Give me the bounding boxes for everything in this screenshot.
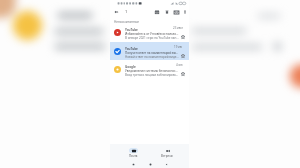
staticText: YouTube	[125, 47, 138, 51]
staticText: Google	[125, 65, 136, 69]
staticText: YouTube	[125, 28, 138, 32]
button[interactable]: YouTube	[110, 23, 189, 42]
staticText: 19 ию	[174, 45, 183, 49]
button[interactable]: Archive	[153, 8, 161, 16]
button[interactable]: Star	[180, 53, 186, 59]
staticText: Вход третьих лицами заблокирован/Бутлег	[125, 73, 179, 77]
staticText: 1	[125, 9, 128, 14]
staticText: 23 июл	[173, 26, 183, 30]
button[interactable]: Star	[180, 34, 186, 40]
staticText: Избавляйтесь от Угловёв использованными	[125, 32, 179, 36]
button[interactable]: More options	[181, 8, 189, 16]
staticText: Встречи	[161, 154, 173, 158]
button[interactable]: Google	[110, 60, 189, 79]
button[interactable]: Встречи	[156, 148, 178, 158]
button[interactable]: Mark as unread	[172, 8, 180, 16]
button[interactable]: Recents	[130, 161, 136, 167]
button[interactable]: Back	[112, 8, 120, 16]
staticText: Получен ответ на комментарий видео сети	[125, 51, 179, 55]
staticText: 4 ию	[176, 63, 183, 67]
staticText: В январе 2021 сери на YouTube каналу ещё	[125, 36, 179, 40]
staticText: Новый ответ на комментарий видео сети	[125, 55, 179, 59]
button[interactable]: Delete	[163, 8, 171, 16]
staticText: Почта	[129, 154, 138, 158]
button[interactable]: Star	[180, 71, 186, 77]
staticText: Непрочитанные	[114, 20, 140, 24]
button[interactable]: Home	[147, 161, 153, 167]
button[interactable]: Back	[163, 161, 169, 167]
staticText: Уведомление системы безопасности для	[125, 69, 179, 73]
button[interactable]: YouTube	[110, 42, 189, 61]
button[interactable]: Почта	[122, 148, 144, 158]
